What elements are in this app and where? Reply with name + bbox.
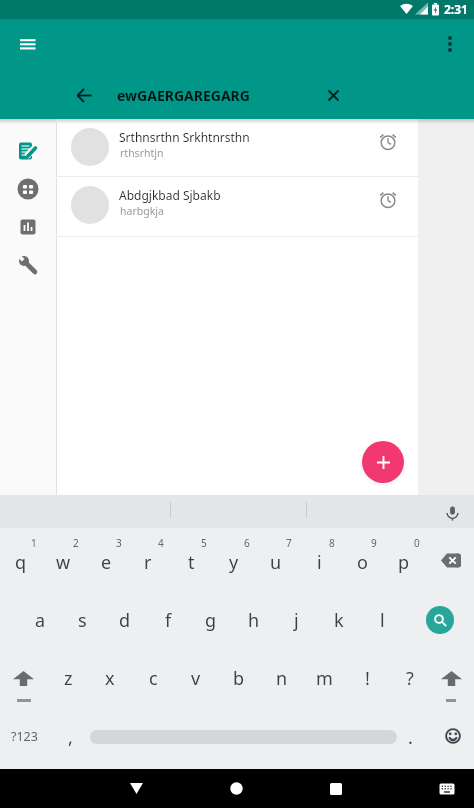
staticText: a xyxy=(35,608,46,633)
button[interactable]: ! xyxy=(346,650,388,706)
button[interactable] xyxy=(8,207,48,247)
button[interactable] xyxy=(427,534,474,586)
staticText: harbgkja xyxy=(120,204,164,218)
staticText: ewGAERGAREGARG xyxy=(117,86,250,105)
button[interactable] xyxy=(56,177,418,236)
button[interactable]: ?123 xyxy=(0,708,48,764)
staticText: 6 xyxy=(244,536,250,550)
button[interactable]: d xyxy=(104,592,146,648)
staticText: v xyxy=(191,666,201,691)
staticText: s xyxy=(78,608,87,633)
staticText: y xyxy=(229,550,239,575)
button[interactable]: , xyxy=(49,709,91,765)
button[interactable] xyxy=(56,119,418,177)
button[interactable] xyxy=(0,650,46,706)
staticText: 8 xyxy=(329,536,335,550)
staticText: z xyxy=(64,666,73,691)
button[interactable] xyxy=(438,499,467,527)
staticText: 7 xyxy=(286,536,292,550)
staticText: g xyxy=(205,608,217,633)
staticText: t xyxy=(188,550,195,575)
staticText: ?123 xyxy=(11,728,38,745)
button[interactable]: t xyxy=(170,536,212,588)
button[interactable]: l xyxy=(361,592,403,648)
button[interactable]: j xyxy=(275,592,317,648)
button[interactable] xyxy=(411,592,468,648)
button[interactable] xyxy=(432,769,462,808)
button[interactable]: y xyxy=(213,536,255,588)
button[interactable] xyxy=(438,709,468,763)
button[interactable]: r xyxy=(127,536,169,588)
button[interactable]: p xyxy=(383,536,425,588)
button[interactable]: o xyxy=(341,536,383,588)
button[interactable]: s xyxy=(61,592,103,648)
button[interactable] xyxy=(114,769,158,808)
staticText: ! xyxy=(365,666,370,691)
staticText: 2 xyxy=(73,536,79,550)
button[interactable]: a xyxy=(19,592,61,648)
staticText: e xyxy=(101,550,112,575)
button[interactable]: x xyxy=(89,650,131,706)
staticText: p xyxy=(398,550,410,575)
staticText: k xyxy=(334,608,344,633)
staticText: rthsrhtjn xyxy=(120,146,164,160)
button[interactable]: b xyxy=(218,650,260,706)
button[interactable] xyxy=(436,30,464,58)
staticText: h xyxy=(248,608,260,633)
button[interactable] xyxy=(428,650,474,706)
button[interactable] xyxy=(8,245,48,285)
staticText: u xyxy=(270,550,282,575)
staticText: , xyxy=(68,725,73,750)
button[interactable]: e xyxy=(85,536,127,588)
staticText: j xyxy=(294,608,299,633)
staticText: d xyxy=(119,608,131,633)
staticText: . xyxy=(408,725,413,750)
button[interactable] xyxy=(8,131,48,171)
button[interactable]: f xyxy=(147,592,189,648)
staticText: 9 xyxy=(371,536,377,550)
button[interactable] xyxy=(12,28,44,60)
staticText: n xyxy=(276,666,288,691)
button[interactable] xyxy=(362,441,404,483)
button[interactable]: u xyxy=(255,536,297,588)
staticText: 5 xyxy=(201,536,207,550)
staticText: 2:31 xyxy=(444,1,468,17)
staticText: x xyxy=(105,666,115,691)
button[interactable]: n xyxy=(261,650,303,706)
button[interactable] xyxy=(68,79,100,111)
staticText: 1 xyxy=(31,536,37,550)
staticText: f xyxy=(165,608,172,633)
button[interactable]: . xyxy=(389,709,431,765)
staticText: b xyxy=(233,666,245,691)
button[interactable]: i xyxy=(298,536,340,588)
button[interactable]: ? xyxy=(389,650,431,706)
button[interactable] xyxy=(104,77,314,113)
staticText: Srthnsrthn Srkhtnrsthn xyxy=(119,129,250,145)
button[interactable]: k xyxy=(318,592,360,648)
staticText: ? xyxy=(406,666,414,691)
staticText: 0 xyxy=(414,536,420,550)
button[interactable]: z xyxy=(47,650,89,706)
staticText: l xyxy=(380,608,385,633)
button[interactable]: c xyxy=(132,650,174,706)
staticText: w xyxy=(56,550,71,575)
button[interactable]: q xyxy=(0,536,42,588)
staticText: o xyxy=(357,550,368,575)
button[interactable] xyxy=(214,769,258,808)
staticText: 3 xyxy=(116,536,122,550)
staticText: r xyxy=(144,550,152,575)
button[interactable]: v xyxy=(175,650,217,706)
button[interactable] xyxy=(314,769,358,808)
staticText: i xyxy=(317,550,322,575)
button[interactable] xyxy=(8,169,48,209)
button[interactable]: m xyxy=(303,650,345,706)
button[interactable]: g xyxy=(190,592,232,648)
button[interactable] xyxy=(317,79,349,111)
button[interactable]: w xyxy=(42,536,84,588)
staticText: q xyxy=(15,550,27,575)
staticText: m xyxy=(316,666,333,691)
button[interactable]: h xyxy=(233,592,275,648)
staticText: 4 xyxy=(158,536,164,550)
staticText: c xyxy=(149,666,158,691)
